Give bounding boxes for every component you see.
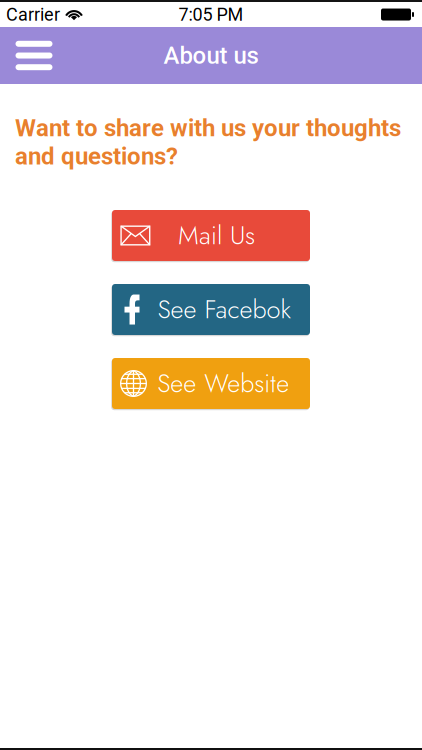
- button[interactable]: Menu: [8, 33, 60, 77]
- staticText: About us: [163, 41, 258, 69]
- staticText: Mail Us: [178, 217, 255, 254]
- button[interactable]: See Facebok: [112, 284, 310, 335]
- staticText: See Website: [157, 365, 289, 402]
- staticText: 7:05 PM: [178, 4, 243, 25]
- button[interactable]: See Website: [112, 358, 310, 409]
- staticText: Want to share with us your thoughts and …: [15, 114, 401, 170]
- staticText: See Facebok: [157, 291, 290, 328]
- button[interactable]: Mail Us: [112, 210, 310, 261]
- staticText: Carrier: [6, 4, 60, 25]
